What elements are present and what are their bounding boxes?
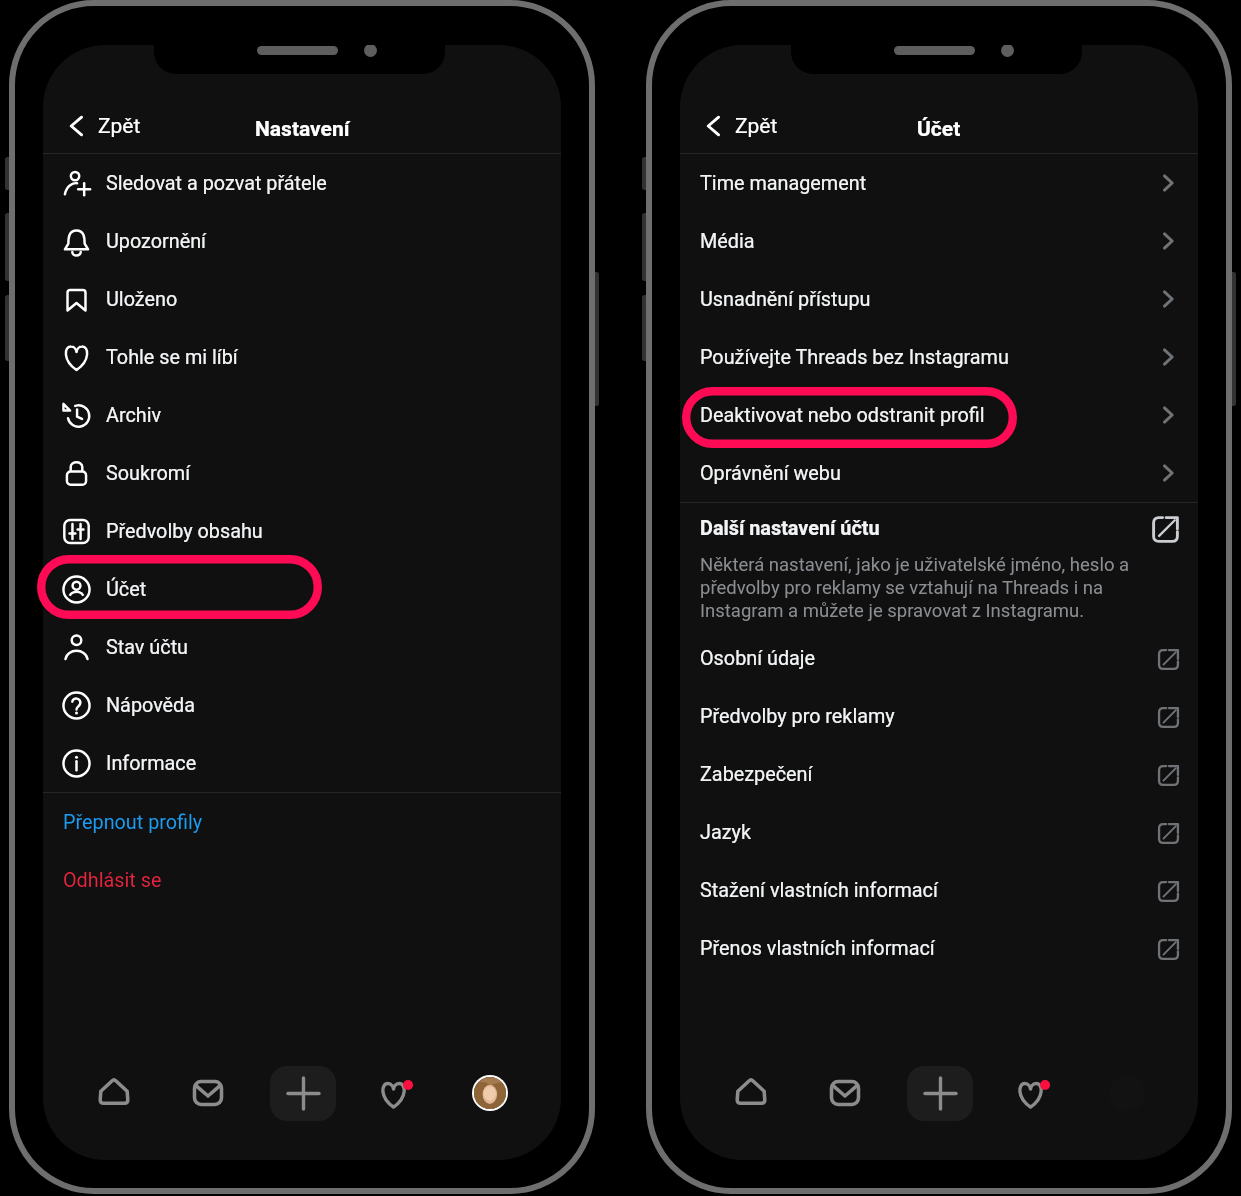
- button[interactable]: Stažení vlastních informací: [680, 861, 1198, 919]
- staticText: Odhlásit se: [63, 869, 162, 892]
- button[interactable]: Messages: [176, 1062, 240, 1124]
- staticText: Média: [700, 230, 755, 253]
- button[interactable]: Oprávnění webu: [680, 444, 1198, 502]
- button[interactable]: Messages: [813, 1062, 877, 1124]
- staticText: Stav účtu: [106, 636, 189, 659]
- button[interactable]: Předvolby obsahu: [43, 502, 561, 560]
- button[interactable]: Upozornění: [43, 212, 561, 270]
- staticText: Zpět: [98, 114, 141, 139]
- button[interactable]: Archiv: [43, 386, 561, 444]
- staticText: Přenos vlastních informací: [700, 937, 935, 960]
- button[interactable]: Další nastavení účtu: [680, 503, 1198, 554]
- staticText: Předvolby obsahu: [106, 520, 263, 543]
- button[interactable]: Sledovat a pozvat přátele: [43, 154, 561, 212]
- staticText: Přepnout profily: [63, 811, 203, 834]
- staticText: Informace: [106, 752, 197, 775]
- staticText: Účet: [106, 578, 147, 601]
- button[interactable]: Účet: [43, 560, 561, 618]
- button[interactable]: Osobní údaje: [680, 629, 1198, 687]
- button[interactable]: Stav účtu: [43, 618, 561, 676]
- staticText: Nastavení: [255, 117, 350, 142]
- staticText: Upozornění: [106, 230, 207, 253]
- staticText: Tohle se mi líbí: [106, 346, 238, 369]
- staticText: Nápověda: [106, 694, 196, 717]
- staticText: Účet: [917, 117, 961, 142]
- button[interactable]: Soukromí: [43, 444, 561, 502]
- button[interactable]: Předvolby pro reklamy: [680, 687, 1198, 745]
- staticText: Zabezpečení: [700, 763, 813, 786]
- button[interactable]: Uloženo: [43, 270, 561, 328]
- staticText: Archiv: [106, 404, 162, 427]
- button[interactable]: Usnadnění přístupu: [680, 270, 1198, 328]
- staticText: Usnadnění přístupu: [700, 288, 871, 311]
- button[interactable]: Odhlásit se: [43, 851, 561, 909]
- button[interactable]: Home: [719, 1062, 783, 1124]
- staticText: Time management: [700, 172, 867, 195]
- staticText: Jazyk: [700, 821, 751, 844]
- button[interactable]: Zpět: [43, 99, 157, 153]
- staticText: Stažení vlastních informací: [700, 879, 938, 902]
- button[interactable]: Média: [680, 212, 1198, 270]
- button[interactable]: Time management: [680, 154, 1198, 212]
- staticText: Soukromí: [106, 462, 191, 485]
- staticText: Uloženo: [106, 288, 178, 311]
- staticText: Osobní údaje: [700, 647, 816, 670]
- staticText: Další nastavení účtu: [700, 517, 880, 540]
- button[interactable]: Tohle se mi líbí: [43, 328, 561, 386]
- button[interactable]: Přepnout profily: [43, 793, 561, 851]
- button[interactable]: Activity: [364, 1062, 428, 1124]
- button[interactable]: Zabezpečení: [680, 745, 1198, 803]
- button[interactable]: Nápověda: [43, 676, 561, 734]
- button[interactable]: Deaktivovat nebo odstranit profil: [680, 386, 1198, 444]
- button[interactable]: New thread: [270, 1066, 336, 1121]
- staticText: Zpět: [735, 114, 778, 139]
- staticText: Používejte Threads bez Instagramu: [700, 346, 1009, 369]
- button[interactable]: Zpět: [680, 99, 794, 153]
- staticText: Předvolby pro reklamy: [700, 705, 895, 728]
- staticText: Sledovat a pozvat přátele: [106, 172, 327, 195]
- button[interactable]: Profile: [458, 1062, 522, 1124]
- button[interactable]: Home: [82, 1062, 146, 1124]
- button[interactable]: Jazyk: [680, 803, 1198, 861]
- staticText: Deaktivovat nebo odstranit profil: [700, 404, 985, 427]
- button[interactable]: New thread: [907, 1066, 973, 1121]
- button[interactable]: Informace: [43, 734, 561, 792]
- button[interactable]: Activity: [1001, 1062, 1065, 1124]
- staticText: Některá nastavení, jako je uživatelské j…: [700, 554, 1150, 622]
- button[interactable]: Přenos vlastních informací: [680, 919, 1198, 977]
- button[interactable]: Používejte Threads bez Instagramu: [680, 328, 1198, 386]
- staticText: Oprávnění webu: [700, 462, 841, 485]
